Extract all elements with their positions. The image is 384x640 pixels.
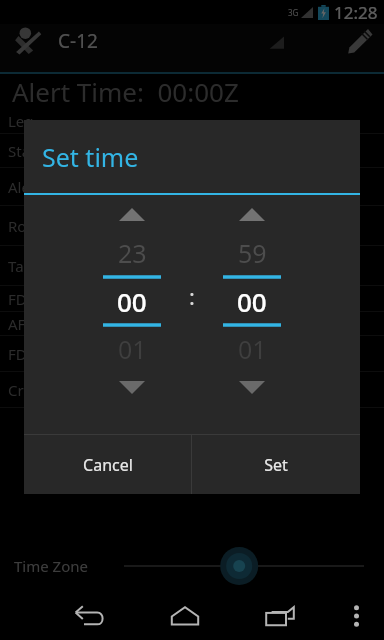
button[interactable]: Increment [209, 197, 295, 231]
staticText: Status [8, 141, 52, 161]
staticText: 00 [237, 284, 267, 319]
button[interactable]: Recent apps [252, 592, 308, 640]
button[interactable]: Set [192, 435, 360, 494]
button[interactable]: Status [0, 134, 384, 168]
button[interactable]: More options [336, 592, 376, 640]
staticText: 00 [117, 284, 147, 319]
staticText: 01 [238, 332, 267, 366]
button[interactable]: Home [157, 592, 213, 640]
button[interactable]: App icon [10, 24, 44, 58]
button[interactable]: Takeoff [0, 246, 384, 286]
button[interactable]: Route [0, 206, 384, 246]
staticText: Route [8, 216, 50, 236]
staticText: Leg [8, 111, 34, 131]
button[interactable]: 00 [209, 279, 295, 323]
button[interactable]: FDP End [0, 336, 384, 372]
staticText: Crew [8, 380, 44, 400]
staticText: Takeoff [8, 256, 60, 276]
button[interactable]: Dropdown [262, 30, 284, 52]
button[interactable]: Back [62, 592, 118, 640]
button[interactable]: Decrement [89, 371, 175, 403]
button[interactable]: Alert [0, 168, 384, 206]
staticText: AFT [8, 314, 34, 334]
button[interactable]: 00 [89, 279, 175, 323]
staticText: 01 [118, 332, 147, 366]
staticText: FDP [8, 289, 36, 309]
button[interactable]: FDP [0, 286, 384, 312]
button[interactable]: Cancel [24, 435, 191, 494]
staticText: : [189, 281, 195, 311]
staticText: 59 [238, 236, 267, 270]
staticText: Cancel [83, 454, 133, 476]
button[interactable]: AFT [0, 312, 384, 336]
button[interactable]: Time Zone [0, 540, 384, 592]
button[interactable]: Decrement [209, 371, 295, 403]
staticText: Set time [42, 140, 139, 174]
staticText: Alert Time: 00:00Z [12, 74, 239, 108]
staticText: 3G [288, 7, 299, 18]
button[interactable]: Crew [0, 372, 384, 408]
button[interactable]: Increment [89, 197, 175, 231]
button[interactable]: Leg [0, 108, 384, 134]
staticText: FDP End [8, 344, 67, 364]
staticText: C-12 [58, 28, 98, 54]
staticText: Set [264, 454, 288, 476]
button[interactable]: C-12 [58, 28, 98, 54]
staticText: 12:28 [334, 1, 378, 24]
staticText: 23 [118, 236, 147, 270]
staticText: Alert [8, 177, 42, 197]
staticText: Time Zone [14, 556, 88, 576]
button[interactable]: Edit [344, 26, 374, 56]
